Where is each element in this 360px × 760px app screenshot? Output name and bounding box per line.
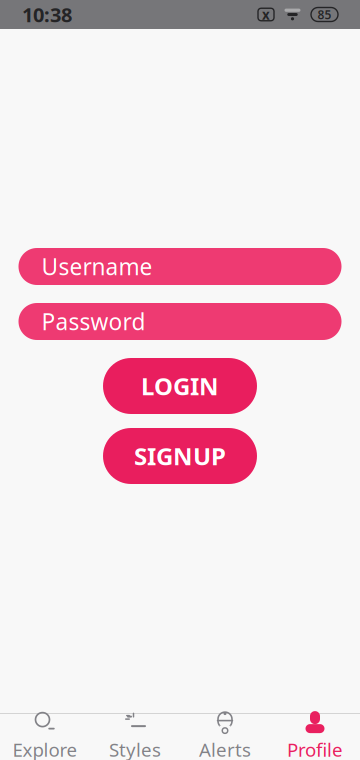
button[interactable]: SIGNUP <box>103 428 257 484</box>
staticText: Username <box>41 251 152 281</box>
staticText: x <box>262 6 270 23</box>
button[interactable]: Alerts <box>180 714 270 759</box>
staticText: Password <box>41 306 145 336</box>
button[interactable]: LOGIN <box>103 358 257 414</box>
staticText: Alerts <box>199 737 251 760</box>
button[interactable]: Password <box>18 303 341 340</box>
staticText: 85 <box>317 6 331 22</box>
staticText: LOGIN <box>141 370 219 402</box>
staticText: Profile <box>287 737 343 760</box>
staticText: Explore <box>12 737 77 760</box>
button[interactable]: Styles <box>90 714 180 759</box>
button[interactable]: Explore <box>0 714 90 759</box>
button[interactable]: Username <box>18 248 341 285</box>
staticText: Styles <box>109 737 161 760</box>
button[interactable]: Profile <box>270 714 360 759</box>
staticText: 10:38 <box>22 1 72 28</box>
staticText: SIGNUP <box>134 440 226 472</box>
